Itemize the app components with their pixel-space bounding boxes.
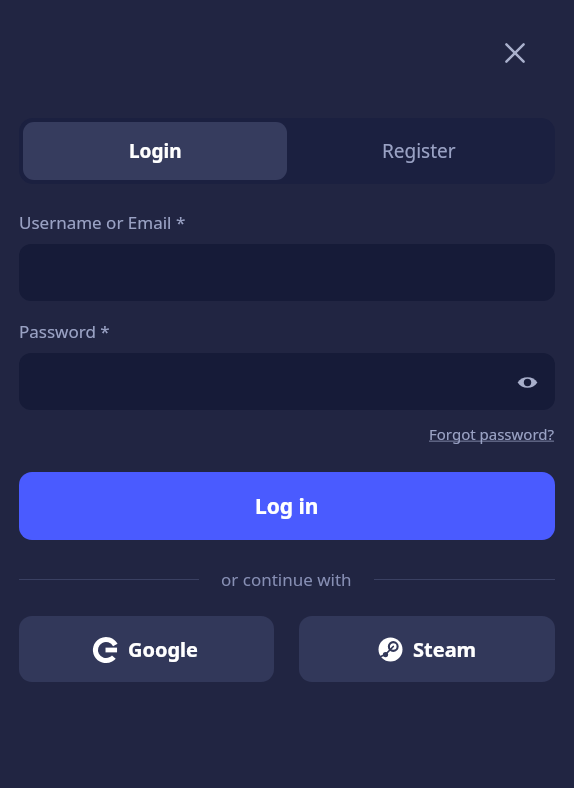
staticText: Password * — [19, 320, 110, 343]
staticText: Google — [128, 636, 199, 663]
button[interactable]: Close — [492, 30, 538, 76]
staticText: Username or Email * — [19, 211, 186, 234]
staticText: Login — [129, 138, 182, 164]
button[interactable]: Forgot password? — [429, 424, 555, 444]
staticText: or continue with — [221, 568, 352, 591]
button[interactable]: Log in — [19, 472, 555, 540]
button[interactable]: Google — [19, 616, 274, 682]
button[interactable]: Steam — [299, 616, 555, 682]
button[interactable]: Show password — [19, 353, 555, 410]
staticText: Steam — [413, 636, 477, 663]
button[interactable]: Show password — [507, 362, 547, 402]
staticText: Register — [382, 138, 456, 164]
button[interactable]: Login — [23, 122, 287, 180]
staticText: Log in — [255, 492, 319, 521]
staticText: Forgot password? — [429, 424, 555, 444]
button[interactable]: Register — [287, 122, 551, 180]
